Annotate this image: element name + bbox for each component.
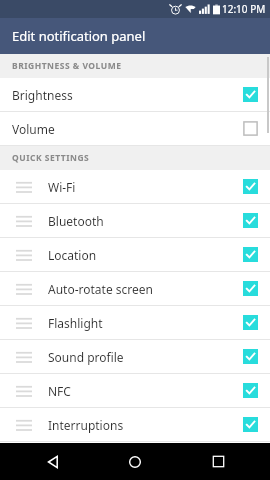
button[interactable]: NFC [0,374,270,407]
staticText: Edit notification panel [12,27,146,45]
staticText: 12:10 PM [222,2,266,16]
button[interactable]: Interruptions [0,408,270,441]
staticText: Flashlight [48,315,230,331]
button[interactable]: Volume [0,112,270,145]
staticText: BRIGHTNESS & VOLUME [12,60,122,72]
button[interactable]: Bluetooth [0,204,270,237]
button[interactable]: Location [0,238,270,271]
staticText: Volume [12,121,230,137]
staticText: NFC [48,383,230,399]
staticText: Wi-Fi [48,179,230,195]
button[interactable]: Flashlight [0,306,270,339]
button[interactable]: Back [23,443,83,480]
staticText: Auto-rotate screen [48,281,230,297]
staticText: Bluetooth [48,213,230,229]
staticText: QUICK SETTINGS [12,152,90,164]
staticText: Interruptions [48,417,230,433]
button[interactable]: Home [105,443,165,480]
button[interactable]: Brightness [0,78,270,111]
button[interactable]: Auto-rotate screen [0,272,270,305]
button[interactable]: Recent apps [188,443,248,480]
staticText: Brightness [12,87,230,103]
staticText: Location [48,247,230,263]
staticText: Sound profile [48,349,230,365]
button[interactable]: Wi-Fi [0,170,270,203]
button[interactable]: Sound profile [0,340,270,373]
